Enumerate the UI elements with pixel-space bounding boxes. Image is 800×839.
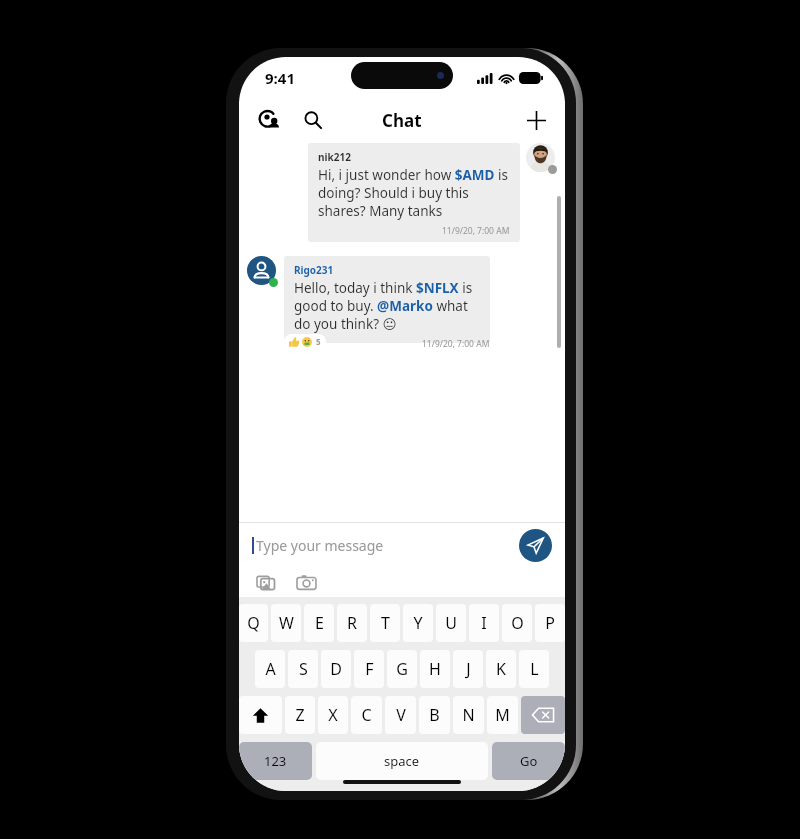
staticText: S xyxy=(299,658,308,680)
button[interactable]: J xyxy=(453,650,483,688)
button[interactable]: B xyxy=(419,696,450,734)
staticText: Go xyxy=(520,752,538,770)
button[interactable]: S xyxy=(288,650,318,688)
button[interactable]: Y xyxy=(403,604,433,642)
staticText: E xyxy=(315,612,324,634)
staticText: X xyxy=(328,704,338,726)
staticText: I xyxy=(481,612,487,634)
staticText: nik212 xyxy=(318,150,351,164)
button[interactable]: V xyxy=(385,696,416,734)
staticText: D xyxy=(330,658,342,680)
button[interactable]: 5 xyxy=(284,334,326,349)
staticText: U xyxy=(445,612,457,634)
button[interactable]: Q xyxy=(239,604,268,642)
staticText: M xyxy=(495,704,510,726)
staticText: Chat xyxy=(382,109,422,132)
staticText: 11/9/20, 7:00 AM xyxy=(422,338,490,350)
button[interactable]: Go xyxy=(492,742,565,780)
staticText: K xyxy=(496,658,506,680)
staticText: J xyxy=(466,658,471,680)
button[interactable]: X xyxy=(318,696,348,734)
button[interactable]: Rigo231 avatar xyxy=(247,256,276,285)
button[interactable]: A xyxy=(255,650,285,688)
button[interactable]: R xyxy=(337,604,367,642)
button[interactable]: Search xyxy=(297,104,329,136)
button[interactable]: Rigo231 xyxy=(284,256,490,343)
button[interactable]: Type your message xyxy=(252,536,519,555)
button[interactable]: U xyxy=(436,604,466,642)
button[interactable]: F xyxy=(354,650,384,688)
staticText: G xyxy=(396,658,408,680)
staticText: Type your message xyxy=(256,536,384,555)
button[interactable]: New chat xyxy=(519,103,553,137)
button[interactable]: P xyxy=(535,604,565,642)
staticText: 5 xyxy=(316,336,321,347)
button[interactable]: Photos xyxy=(253,569,279,595)
button[interactable]: K xyxy=(486,650,516,688)
button[interactable]: nik212 xyxy=(308,143,520,242)
staticText: 123 xyxy=(264,752,287,770)
staticText: B xyxy=(429,704,440,726)
staticText: W xyxy=(279,612,294,634)
button[interactable]: 123 xyxy=(239,742,312,780)
staticText: F xyxy=(365,658,374,680)
button[interactable]: I xyxy=(469,604,499,642)
button[interactable]: T xyxy=(370,604,400,642)
button[interactable]: D xyxy=(321,650,351,688)
staticText: Y xyxy=(413,612,423,634)
button[interactable]: Camera xyxy=(293,569,319,595)
button[interactable]: Shift xyxy=(239,696,282,734)
button[interactable]: O xyxy=(502,604,532,642)
staticText: R xyxy=(347,612,357,634)
staticText: P xyxy=(545,612,555,634)
button[interactable]: space xyxy=(316,742,488,780)
button[interactable]: L xyxy=(519,650,549,688)
button[interactable]: nik212 avatar xyxy=(526,143,555,172)
button[interactable]: C xyxy=(351,696,382,734)
button[interactable]: G xyxy=(387,650,417,688)
staticText: N xyxy=(462,704,475,726)
staticText: 11/9/20, 7:00 AM xyxy=(442,225,510,237)
staticText: V xyxy=(396,704,406,726)
button[interactable]: N xyxy=(453,696,484,734)
staticText: Z xyxy=(295,704,305,726)
button[interactable]: M xyxy=(487,696,518,734)
button[interactable]: Backspace xyxy=(521,696,565,734)
staticText: Q xyxy=(247,612,260,634)
button[interactable]: Z xyxy=(285,696,315,734)
button[interactable]: W xyxy=(271,604,301,642)
staticText: space xyxy=(384,752,420,770)
staticText: H xyxy=(429,658,441,680)
staticText: Rigo231 xyxy=(294,263,334,277)
staticText: L xyxy=(530,658,539,680)
button[interactable]: E xyxy=(304,604,334,642)
staticText: O xyxy=(511,612,524,634)
staticText: Hello, today i think $NFLX is good to bu… xyxy=(294,279,480,333)
button[interactable]: Contacts xyxy=(253,104,285,136)
button[interactable]: H xyxy=(420,650,450,688)
button[interactable]: Send xyxy=(519,529,552,562)
staticText: A xyxy=(265,658,276,680)
staticText: C xyxy=(361,704,372,726)
staticText: Hi, i just wonder how $AMD is doing? Sho… xyxy=(318,166,510,220)
staticText: T xyxy=(381,612,390,634)
staticText: 9:41 xyxy=(265,68,295,88)
